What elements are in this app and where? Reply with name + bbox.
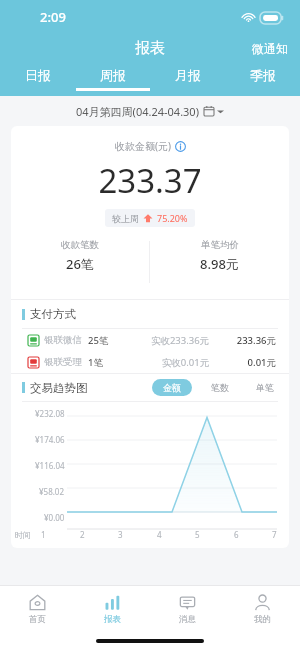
button[interactable]: 首页	[0, 586, 75, 632]
button[interactable]: 收款笔数	[11, 239, 149, 273]
staticText: 3	[118, 529, 123, 540]
staticText: 首页	[29, 614, 46, 625]
button[interactable]: 日报	[0, 62, 75, 96]
button[interactable]: 说明	[175, 141, 186, 152]
staticText: ¥232.08	[35, 408, 65, 419]
staticText: 1	[41, 529, 46, 540]
button[interactable]: 银联受理	[11, 351, 289, 373]
button[interactable]: 银联微信	[11, 329, 289, 351]
staticText: 0.01元	[247, 356, 276, 369]
staticText: 季报	[250, 67, 276, 83]
staticText: 银联受理	[44, 356, 88, 368]
staticText: 月报	[175, 67, 201, 83]
staticText: 实收233.36元	[124, 334, 236, 347]
staticText: 单笔均价	[201, 239, 239, 251]
staticText: 6	[234, 529, 239, 540]
button[interactable]: 季报	[225, 62, 300, 96]
button[interactable]: 报表	[75, 586, 150, 632]
staticText: 233.37	[11, 158, 289, 203]
staticText: 75.20%	[157, 212, 188, 224]
button[interactable]: 金额	[152, 379, 192, 396]
staticText: 7	[272, 529, 277, 540]
staticText: 收款金额(元)	[115, 139, 171, 153]
staticText: 实收0.01元	[124, 356, 247, 369]
staticText: 银联微信	[44, 334, 88, 346]
staticText: 时间	[15, 530, 41, 540]
staticText: 周报	[100, 67, 126, 83]
staticText: 25笔	[88, 334, 124, 347]
staticText: 收款笔数	[61, 239, 99, 251]
button[interactable]: 单笔均价	[150, 239, 289, 273]
staticText: 5	[195, 529, 200, 540]
button[interactable]: 月报	[150, 62, 225, 96]
button[interactable]: 消息	[150, 586, 225, 632]
button[interactable]: 周报	[75, 62, 150, 96]
staticText: ¥0.00	[44, 512, 65, 522]
staticText: 微通知	[252, 41, 288, 56]
staticText: 交易趋势图	[30, 381, 88, 395]
staticText: 报表	[135, 39, 165, 58]
staticText: 4	[157, 529, 162, 540]
staticText: 04月第四周(04.24-04.30)	[76, 104, 199, 119]
staticText: 我的	[254, 614, 271, 625]
staticText: ¥174.06	[35, 434, 65, 445]
button[interactable]: 笔数	[209, 379, 231, 396]
staticText: ¥116.04	[35, 460, 65, 471]
staticText: 2	[80, 529, 85, 540]
staticText: 8.98元	[200, 255, 239, 273]
staticText: 笔数	[211, 382, 229, 393]
staticText: 支付方式	[30, 307, 76, 321]
staticText: ¥58.02	[39, 486, 65, 497]
staticText: 233.36元	[236, 334, 276, 347]
staticText: 26笔	[66, 255, 94, 273]
staticText: 1笔	[88, 356, 124, 369]
staticText: 消息	[179, 614, 196, 625]
button[interactable]: 我的	[225, 586, 300, 632]
staticText: 金额	[163, 382, 181, 393]
staticText: 报表	[104, 614, 121, 625]
button[interactable]: 单笔	[254, 379, 276, 396]
staticText: 单笔	[256, 382, 274, 393]
button[interactable]: 微通知	[240, 37, 300, 60]
staticText: 日报	[25, 67, 51, 83]
staticText: 2:09	[40, 8, 66, 26]
staticText: 较上周	[112, 213, 139, 224]
button[interactable]: 04月第四周(04.24-04.30)	[0, 96, 300, 126]
button[interactable]: 较上周	[105, 209, 195, 227]
